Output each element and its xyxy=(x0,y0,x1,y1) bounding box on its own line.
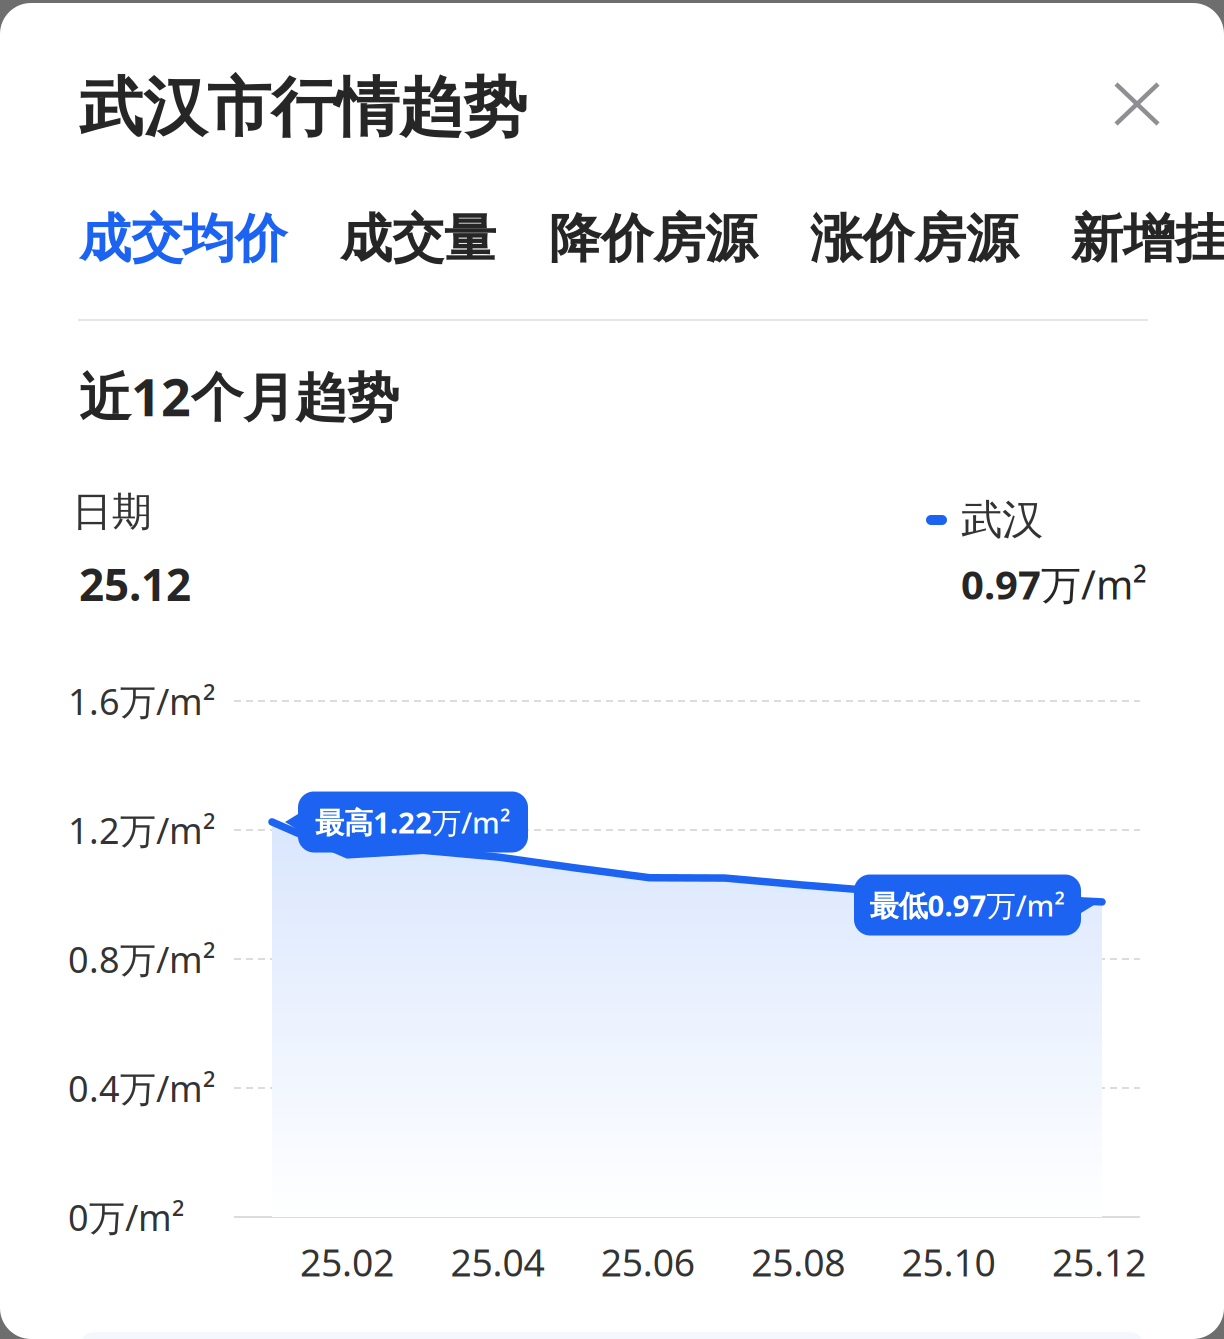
staticText: 成交量 xyxy=(340,207,496,271)
staticText: 25.12 xyxy=(1052,1237,1146,1287)
staticText: 近12个月趋势 xyxy=(79,361,399,431)
staticText: 1.6万/m² xyxy=(68,677,216,725)
staticText: 涨价房源 xyxy=(810,207,1018,271)
staticText: 成交量 xyxy=(748,0,904,6)
staticText: 成交均价 xyxy=(79,207,287,271)
staticText: 0万/m² xyxy=(68,1193,185,1241)
staticText: 武汉市行情趋势 xyxy=(79,69,527,147)
staticText: 日期 xyxy=(72,487,152,536)
button[interactable]: 涨价房源 xyxy=(810,207,1018,271)
staticText: 成交均价 xyxy=(240,0,448,6)
staticText: 降价房源 xyxy=(549,207,757,271)
staticText: 25.12 xyxy=(79,555,191,613)
button[interactable]: 关闭 xyxy=(1090,58,1184,150)
staticText: 新增挂牌 xyxy=(1071,207,1224,271)
staticText: 0.8万/m² xyxy=(68,935,216,983)
staticText: 25.06 xyxy=(601,1237,695,1287)
staticText: 0.4万/m² xyxy=(68,1064,216,1112)
staticText: 1.2万/m² xyxy=(68,806,216,854)
staticText: 0.97万/m² xyxy=(961,557,1147,610)
staticText: 25.02 xyxy=(300,1237,394,1287)
staticText: 25.10 xyxy=(902,1237,996,1287)
button[interactable]: 新增挂牌 xyxy=(1071,207,1224,271)
staticText: 25.08 xyxy=(751,1237,845,1287)
staticText: 25.04 xyxy=(450,1237,544,1287)
staticText: 最低0.97万/m² xyxy=(869,885,1065,924)
button[interactable]: 成交量 xyxy=(340,207,496,271)
button[interactable]: 成交均价 xyxy=(79,207,287,271)
staticText: 武汉 xyxy=(961,495,1043,545)
staticText: 最高1.22万/m² xyxy=(315,802,511,841)
button[interactable]: 降价房源 xyxy=(549,207,757,271)
